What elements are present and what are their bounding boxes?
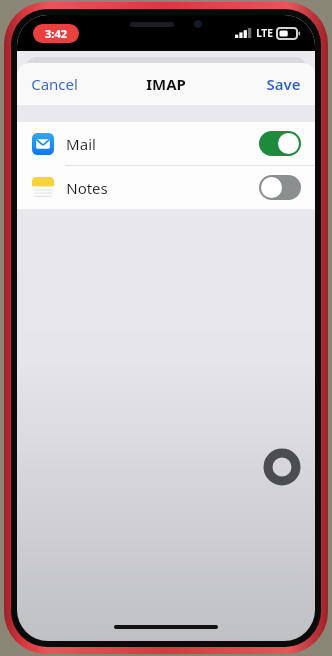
button[interactable]: On [259, 131, 301, 156]
button[interactable]: Save [256, 68, 315, 100]
staticText: Mail [66, 134, 96, 154]
button[interactable]: Off [259, 175, 301, 200]
button[interactable]: Notes [17, 166, 315, 209]
other: Touch indicator [263, 448, 301, 486]
staticText: Save [266, 74, 301, 94]
button[interactable]: Cancel [17, 68, 88, 100]
staticText: LTE [256, 26, 273, 40]
staticText: Notes [66, 178, 108, 198]
staticText: IMAP [146, 74, 186, 94]
button[interactable]: Mail [17, 122, 315, 165]
staticText: 3:42 [45, 26, 67, 41]
staticText: Cancel [31, 74, 78, 94]
